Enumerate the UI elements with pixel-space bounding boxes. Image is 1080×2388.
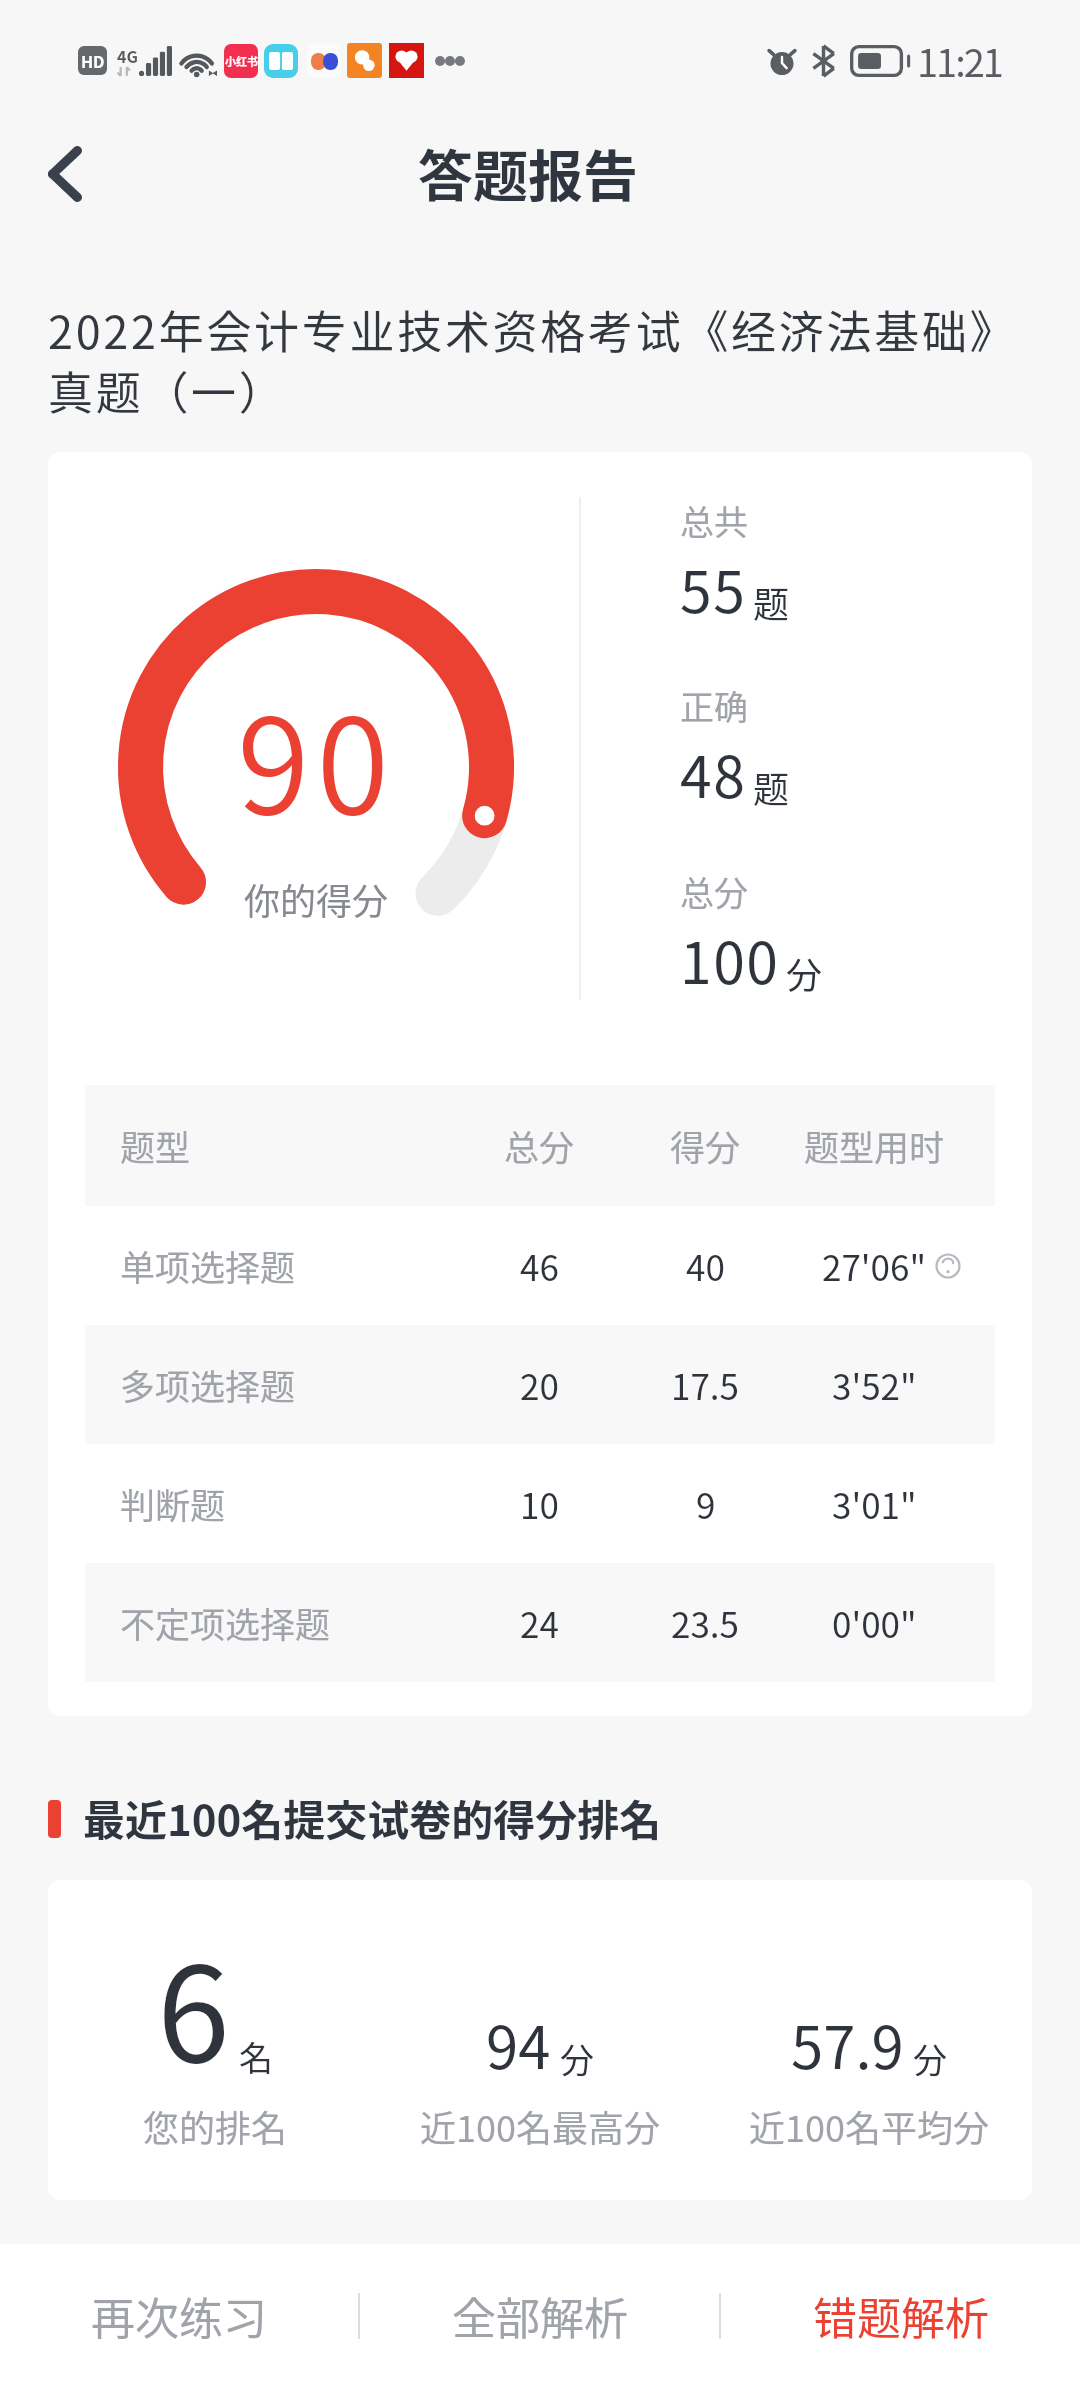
- staticText: 错题解析: [813, 2284, 989, 2348]
- staticText: 40: [686, 1240, 725, 1291]
- staticText: 分: [913, 2034, 947, 2083]
- staticText: 100: [680, 918, 780, 1001]
- button[interactable]: 再次练习: [0, 2244, 358, 2388]
- staticText: 20: [520, 1359, 559, 1410]
- staticText: 分: [786, 947, 823, 999]
- staticText: 得分: [670, 1120, 741, 1171]
- staticText: 6: [157, 1910, 230, 2100]
- staticText: 2022年会计专业技术资格考试《经济法基础》 真题（一）: [48, 297, 1018, 423]
- button[interactable]: Back: [0, 114, 130, 234]
- staticText: 小红书: [225, 53, 258, 69]
- staticText: 近100名平均分: [749, 2100, 989, 2152]
- staticText: 4G: [117, 44, 138, 67]
- staticText: 近100名最高分: [420, 2100, 660, 2152]
- staticText: 单项选择题: [120, 1240, 296, 1291]
- staticText: 总分: [504, 1120, 575, 1171]
- staticText: 你的得分: [244, 873, 389, 925]
- staticText: 判断题: [120, 1478, 226, 1529]
- staticText: 总分: [680, 867, 748, 916]
- staticText: 题: [753, 576, 790, 628]
- staticText: 最近100名提交试卷的得分排名: [83, 1787, 662, 1847]
- button[interactable]: 错题解析: [721, 2244, 1080, 2388]
- staticText: 3'01": [832, 1478, 917, 1529]
- staticText: 不定项选择题: [120, 1597, 331, 1648]
- staticText: 9: [696, 1478, 716, 1529]
- staticText: 题型用时: [804, 1120, 945, 1171]
- staticText: 全部解析: [452, 2284, 628, 2348]
- staticText: 分: [560, 2034, 594, 2083]
- staticText: 3'52": [832, 1359, 917, 1410]
- staticText: 再次练习: [91, 2284, 267, 2348]
- staticText: 10: [520, 1478, 559, 1529]
- staticText: 94: [486, 2002, 551, 2086]
- staticText: 答题报告: [418, 132, 639, 212]
- staticText: 23.5: [671, 1597, 740, 1648]
- staticText: 27'06": [822, 1240, 927, 1291]
- staticText: 24: [520, 1597, 559, 1648]
- staticText: 多项选择题: [120, 1359, 296, 1410]
- staticText: 48: [680, 732, 747, 815]
- staticText: 名: [239, 2032, 273, 2081]
- staticText: 55: [680, 547, 747, 630]
- staticText: 总共: [680, 496, 748, 545]
- button[interactable]: 全部解析: [360, 2244, 719, 2388]
- staticText: 90: [237, 661, 396, 852]
- staticText: 正确: [680, 681, 748, 730]
- staticText: HD: [81, 49, 105, 72]
- staticText: 17.5: [671, 1359, 740, 1410]
- staticText: 0'00": [832, 1597, 917, 1648]
- staticText: 您的排名: [143, 2100, 288, 2152]
- staticText: 题型: [120, 1120, 191, 1171]
- staticText: 11:21: [917, 33, 1002, 88]
- staticText: 57.9: [791, 2002, 904, 2086]
- staticText: 题: [753, 761, 790, 813]
- staticText: 46: [520, 1240, 559, 1291]
